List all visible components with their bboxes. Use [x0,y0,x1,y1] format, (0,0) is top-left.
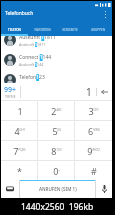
staticText: Auskunft 11811 [19,42,46,47]
staticText: Auskunft 1144 [19,62,44,67]
staticText: Auskunft 11811 [19,36,56,41]
button[interactable]: 1 [1,101,38,120]
staticText: Connect 1144 [19,54,52,61]
staticText: 0+ [53,165,60,177]
staticText: 9WXYZ [87,145,100,157]
staticText: * [17,165,22,177]
button[interactable]: KONTAKTE [56,21,84,36]
button[interactable]: 2ABC [38,101,75,120]
staticText: Telefon123 [19,74,45,81]
staticText: 4GHI [14,125,25,137]
button[interactable]: 5JKL [38,121,75,140]
button[interactable]: 7PQRS [1,141,38,160]
button[interactable]: GRUPPEN [84,21,112,36]
button[interactable]: 4GHI [1,121,38,140]
button[interactable]: Connect 1144 [1,50,112,70]
staticText: 1 [86,85,92,99]
staticText: 8TUV [51,145,62,157]
staticText: 3DEF [88,105,99,117]
staticText: FAVORITEN [34,28,51,32]
button[interactable]: TELEFON [1,21,28,36]
staticText: # [91,165,97,177]
button[interactable]: 6MNO [75,121,112,140]
button[interactable]: 0+ [38,161,75,180]
staticText: 7PQRS [13,145,26,157]
staticText: 99+ [4,85,17,95]
button[interactable]: Hide dialpad [1,180,19,198]
button[interactable]: 8TUV [38,141,75,160]
button[interactable]: Auskunft 11811 [1,36,112,50]
button[interactable]: 99+ [1,83,20,101]
staticText: 2ABC [51,105,62,117]
button[interactable]: Telefon123 [1,70,112,83]
staticText: 1440x2560 196kb [21,201,94,213]
staticText: KONTAKTE [62,28,78,32]
staticText: 5JKL [52,125,62,137]
button[interactable]: Voice search [96,180,112,198]
button[interactable]: 3DEF [75,101,112,120]
button[interactable]: # [75,161,112,180]
staticText: Telefonbuch [5,10,34,17]
button[interactable]: * [1,161,38,180]
staticText: GRUPPEN [91,28,105,32]
button[interactable]: Backspace [99,87,109,97]
staticText: 1 [17,105,23,117]
staticText: TREFFER [5,95,16,99]
staticText: TELEFON [8,28,21,32]
button[interactable]: FAVORITEN [28,21,56,36]
staticText: 6MNO [88,125,100,137]
button[interactable]: 9WXYZ [75,141,112,160]
button[interactable]: ANRUFEN (SIM 1) [20,180,95,198]
button[interactable]: More options [99,8,112,21]
staticText: ANRUFEN (SIM 1) [39,186,77,192]
